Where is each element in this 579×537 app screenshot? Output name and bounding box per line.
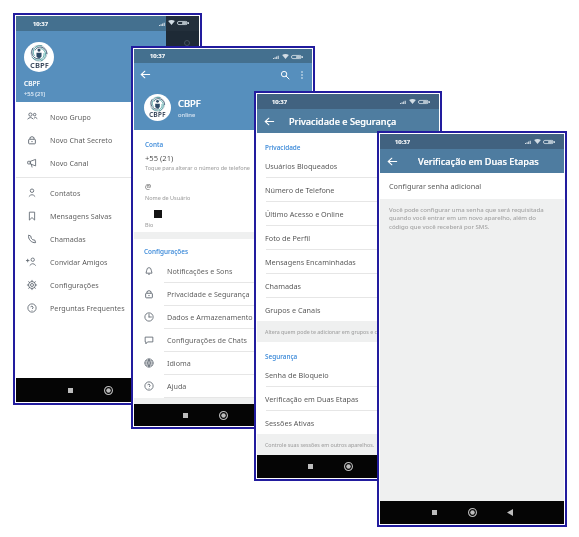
button[interactable]: Verificação em Duas Etapas xyxy=(257,387,439,410)
staticText: online xyxy=(178,111,196,119)
staticText: CBPF xyxy=(30,60,49,70)
button[interactable]: Mensagens Salvas xyxy=(16,204,166,227)
staticText: Altera quem pode te adicionar em grupos … xyxy=(265,328,392,335)
button[interactable]: Recents xyxy=(51,379,89,402)
staticText: Idioma xyxy=(167,358,191,368)
button[interactable]: Chamadas xyxy=(257,274,439,297)
staticText: Notificações e Sons xyxy=(167,266,233,276)
button[interactable]: Novo Chat Secreto xyxy=(16,128,166,151)
button[interactable]: Ajuda xyxy=(134,375,312,397)
staticText: Verificação em Duas Etapas xyxy=(265,394,359,404)
button[interactable]: Recents xyxy=(291,455,329,478)
staticText: Ajuda xyxy=(167,381,187,391)
button[interactable]: Back xyxy=(263,115,276,128)
staticText: Nome de Usuário xyxy=(145,194,191,201)
button[interactable]: Usuários Bloqueados xyxy=(257,154,439,177)
button[interactable]: Dados e Armazenamento xyxy=(134,306,312,328)
staticText: Toque para alterar o número de telefone xyxy=(145,164,250,171)
button[interactable]: Home xyxy=(89,379,127,402)
staticText: Novo Chat Secreto xyxy=(50,135,113,145)
staticText: Novo Grupo xyxy=(50,112,91,122)
button[interactable]: Convidar Amigos xyxy=(16,250,166,273)
button[interactable]: Configurar senha adicional xyxy=(380,173,564,199)
staticText: Chamadas xyxy=(265,281,301,291)
staticText: 10:37 xyxy=(272,98,288,106)
button[interactable]: Notificações e Sons xyxy=(134,260,312,282)
staticText: Você pode configurar uma senha que será … xyxy=(389,205,547,231)
button[interactable]: Foto de Perfil xyxy=(257,226,439,249)
staticText: Dados e Armazenamento xyxy=(167,312,253,322)
staticText: Configurar senha adicional xyxy=(389,181,482,191)
staticText: Foto de Perfil xyxy=(265,233,311,243)
staticText: Senha de Bloqueio xyxy=(265,370,329,380)
button[interactable]: Configurações de Chats xyxy=(134,329,312,351)
button[interactable]: Back xyxy=(386,155,399,168)
staticText: Controle suas sessões em outros aparelho… xyxy=(265,441,375,448)
staticText: 10:37 xyxy=(395,138,411,146)
staticText: Segurança xyxy=(265,352,298,361)
staticText: Contatos xyxy=(50,188,81,198)
staticText: @ xyxy=(145,182,152,192)
button[interactable]: Home xyxy=(204,404,242,426)
button[interactable]: Perguntas Frequentes xyxy=(16,296,166,319)
staticText: Perguntas Frequentes xyxy=(50,303,125,313)
staticText: Usuários Bloqueados xyxy=(265,161,338,171)
button[interactable]: Novo Canal xyxy=(16,151,166,174)
button[interactable]: Idioma xyxy=(134,352,312,374)
button[interactable]: Novo Grupo xyxy=(16,105,166,128)
staticText: Conta xyxy=(145,140,164,149)
staticText: Configurações xyxy=(50,280,99,290)
staticText: Grupos e Canais xyxy=(265,305,321,315)
button[interactable]: Grupos e Canais xyxy=(257,298,439,321)
button[interactable]: Sessões Ativas xyxy=(257,411,439,434)
staticText: Mensagens Salvas xyxy=(50,211,112,221)
staticText: Número de Telefone xyxy=(265,185,335,195)
staticText: CBPF xyxy=(178,97,201,110)
staticText: Configurações de Chats xyxy=(167,335,247,345)
button[interactable]: More options xyxy=(295,68,308,81)
button[interactable]: Privacidade e Segurança xyxy=(134,283,312,305)
staticText: Privacidade e Segurança xyxy=(289,115,397,128)
staticText: +55 (21) xyxy=(145,153,174,163)
staticText: Chamadas xyxy=(50,234,86,244)
button[interactable]: Search xyxy=(278,68,291,81)
staticText: Privacidade e Segurança xyxy=(167,289,250,299)
staticText: 10:37 xyxy=(150,52,166,60)
staticText: Mensagens Encaminhadas xyxy=(265,257,356,267)
button[interactable]: Número de Telefone xyxy=(257,178,439,201)
button[interactable]: Senha de Bloqueio xyxy=(257,363,439,386)
staticText: Configurações xyxy=(144,247,188,256)
staticText: Verificação em Duas Etapas xyxy=(418,155,539,168)
staticText: Sessões Ativas xyxy=(265,418,315,428)
staticText: Último Acesso e Online xyxy=(265,209,344,219)
button[interactable]: Back xyxy=(491,501,529,524)
button[interactable]: Último Acesso e Online xyxy=(257,202,439,225)
button[interactable]: Home xyxy=(453,501,491,524)
button[interactable]: Configurações xyxy=(16,273,166,296)
staticText: Novo Canal xyxy=(50,158,89,168)
button[interactable]: Home xyxy=(329,455,367,478)
staticText: Privacidade xyxy=(265,143,301,152)
button[interactable]: Contatos xyxy=(16,181,166,204)
staticText: Convidar Amigos xyxy=(50,257,108,267)
staticText: 10:37 xyxy=(33,20,49,28)
button[interactable]: Mensagens Encaminhadas xyxy=(257,250,439,273)
button[interactable]: Recents xyxy=(166,404,204,426)
staticText: +55 (21) xyxy=(24,90,46,98)
button[interactable]: Back xyxy=(139,68,152,81)
staticText: CBPF xyxy=(24,79,40,88)
staticText: CBPF xyxy=(149,110,166,119)
staticText: Bio xyxy=(145,221,154,228)
button[interactable]: Recents xyxy=(415,501,453,524)
button[interactable]: Chamadas xyxy=(16,227,166,250)
